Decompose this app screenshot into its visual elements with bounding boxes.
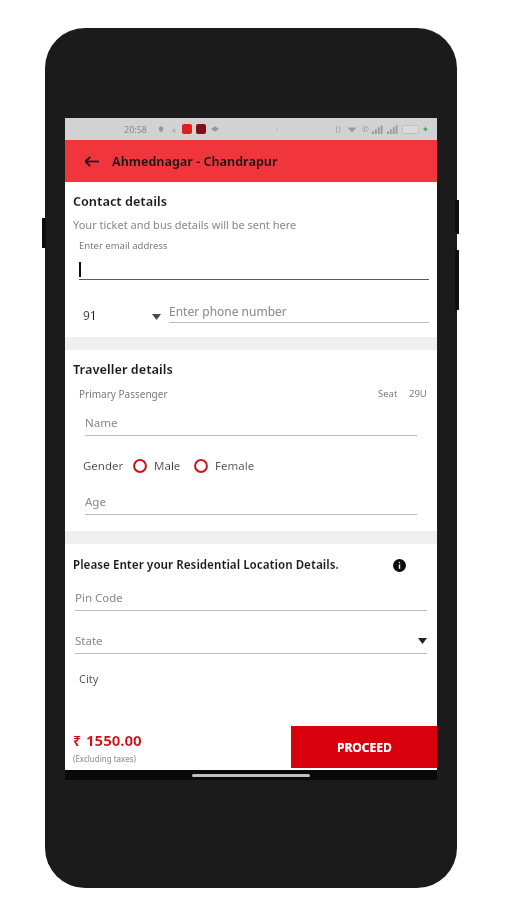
button[interactable]: 91 <box>73 307 169 323</box>
button[interactable]: Male <box>133 458 181 474</box>
staticText: Contact details <box>73 193 168 210</box>
staticText: City <box>79 671 99 686</box>
button[interactable]: State <box>75 633 427 654</box>
staticText: ⟨⟩ <box>335 125 342 134</box>
button[interactable] <box>79 258 429 280</box>
staticText: « <box>172 124 177 135</box>
staticText: Male <box>154 458 181 474</box>
staticText: ₹ <box>73 731 82 750</box>
staticText: Your ticket and bus details will be sent… <box>73 217 297 232</box>
staticText: State <box>75 633 103 649</box>
button[interactable]: Enter phone number <box>169 303 429 323</box>
staticText: 91 <box>83 307 97 323</box>
button[interactable]: Female <box>194 458 255 474</box>
button[interactable]: Back <box>81 151 101 171</box>
button[interactable]: Name <box>85 415 417 436</box>
staticText: Seat <box>378 387 398 400</box>
staticText: PROCEED <box>337 739 392 755</box>
button[interactable]: Back <box>65 140 437 182</box>
staticText: 20:58 <box>124 123 148 135</box>
staticText: Primary Passenger <box>79 387 168 401</box>
staticText: Female <box>215 458 255 474</box>
staticText: Pin Code <box>75 590 123 606</box>
button[interactable]: PROCEED <box>291 726 437 768</box>
staticText: Age <box>85 494 106 510</box>
staticText: 1550.00 <box>86 730 142 750</box>
staticText: Enter phone number <box>169 303 287 319</box>
staticText: Traveller details <box>73 361 173 378</box>
staticText: ✦ <box>422 125 429 134</box>
staticText: Please Enter your Residential Location D… <box>73 557 339 573</box>
button[interactable]: Information <box>391 557 407 573</box>
staticText: Name <box>85 415 118 431</box>
staticText: (Excluding taxes) <box>73 753 136 764</box>
staticText: Ahmednagar - Chandrapur <box>112 153 278 170</box>
staticText: ✆ <box>362 125 369 134</box>
button[interactable]: Pin Code <box>75 590 427 611</box>
staticText: · <box>276 123 279 135</box>
staticText: 29U <box>409 387 427 400</box>
staticText: Enter email address <box>79 239 168 252</box>
button[interactable]: Age <box>85 494 417 515</box>
staticText: Gender <box>83 458 124 474</box>
